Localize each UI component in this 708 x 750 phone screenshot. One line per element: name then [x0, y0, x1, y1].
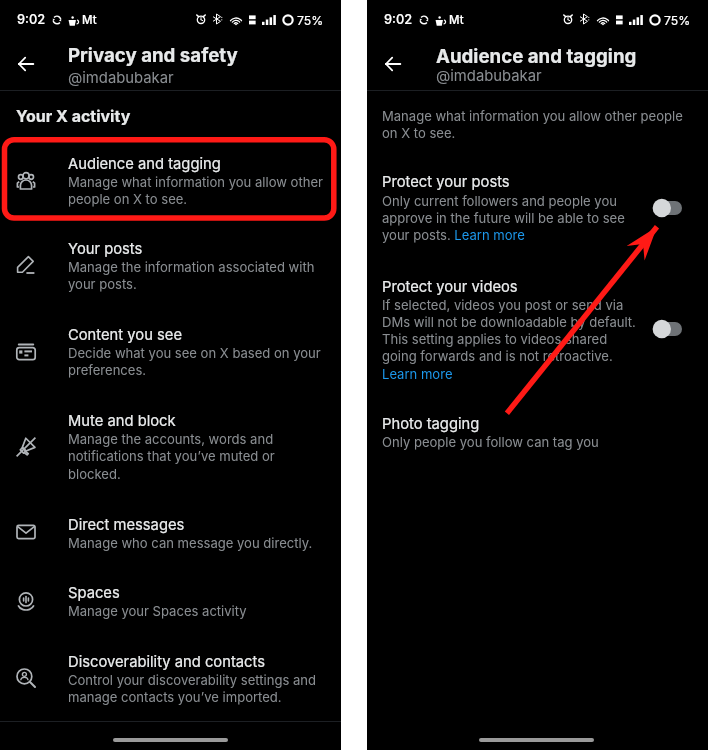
- staticText: going forwards and is not retroactive.: [382, 348, 613, 364]
- staticText: Manage what information you allow other …: [382, 108, 683, 124]
- button[interactable]: Back: [375, 46, 411, 82]
- staticText: on X to see.: [382, 125, 456, 141]
- staticText: Only people you follow can tag you: [382, 434, 599, 450]
- staticText: If selected, videos you post or send via: [382, 297, 624, 313]
- staticText: This setting applies to videos shared: [382, 331, 608, 347]
- staticText: Mt: [82, 13, 97, 27]
- button[interactable]: Content you see: [0, 314, 341, 385]
- staticText: Protect your videos: [382, 278, 518, 296]
- staticText: manage contacts you’ve imported.: [68, 689, 282, 705]
- staticText: 9:02: [384, 12, 413, 27]
- staticText: Decide what you see on X based on your: [68, 345, 321, 361]
- staticText: Your posts: [68, 240, 143, 258]
- staticText: Control your discoverability settings an…: [68, 672, 317, 688]
- button[interactable]: Discoverability and contacts: [0, 641, 341, 712]
- staticText: Manage your Spaces activity: [68, 603, 247, 619]
- staticText: Privacy and safety: [68, 44, 238, 67]
- staticText: people on X to see.: [68, 191, 188, 207]
- staticText: Learn more: [382, 366, 453, 382]
- staticText: 75%: [297, 13, 324, 28]
- staticText: Manage the accounts, words and: [68, 431, 274, 447]
- staticText: Manage the information associated with: [68, 259, 315, 275]
- staticText: Photo tagging: [382, 415, 480, 433]
- staticText: Manage who can message you directly.: [68, 535, 313, 551]
- staticText: Audience and tagging: [68, 155, 221, 173]
- staticText: 9:02: [17, 12, 46, 27]
- button[interactable]: Back: [8, 46, 44, 82]
- button[interactable]: Direct messages: [0, 504, 341, 558]
- button[interactable]: Your posts: [0, 228, 341, 299]
- staticText: your posts. Learn more: [382, 227, 525, 243]
- staticText: Mute and block: [68, 412, 176, 430]
- staticText: Spaces: [68, 584, 120, 602]
- staticText: @imdabubakar: [68, 69, 174, 87]
- button[interactable]: Toggle setting: [653, 322, 682, 336]
- staticText: Mt: [449, 13, 464, 27]
- staticText: blocked.: [68, 466, 121, 482]
- staticText: Your X activity: [16, 106, 131, 125]
- staticText: preferences.: [68, 362, 147, 378]
- button[interactable]: Audience and tagging: [0, 143, 341, 214]
- staticText: 75%: [664, 13, 691, 28]
- staticText: Protect your posts: [382, 173, 510, 191]
- staticText: approve in the future will be able to se…: [382, 210, 625, 226]
- staticText: Content you see: [68, 326, 183, 344]
- staticText: Discoverability and contacts: [68, 653, 265, 671]
- staticText: DMs will not be downloadable by default.: [382, 314, 636, 330]
- button[interactable]: Spaces: [0, 572, 341, 626]
- staticText: @imdabubakar: [436, 67, 542, 85]
- staticText: Manage what information you allow other: [68, 174, 323, 190]
- button[interactable]: Mute and block: [0, 400, 341, 489]
- button[interactable]: Toggle setting: [653, 201, 682, 215]
- staticText: your posts.: [68, 276, 137, 292]
- staticText: Direct messages: [68, 516, 185, 534]
- staticText: notifications that you’ve muted or: [68, 448, 275, 464]
- staticText: Audience and tagging: [436, 45, 637, 68]
- staticText: Only current followers and people you: [382, 193, 617, 209]
- button[interactable]: [0, 35, 341, 91]
